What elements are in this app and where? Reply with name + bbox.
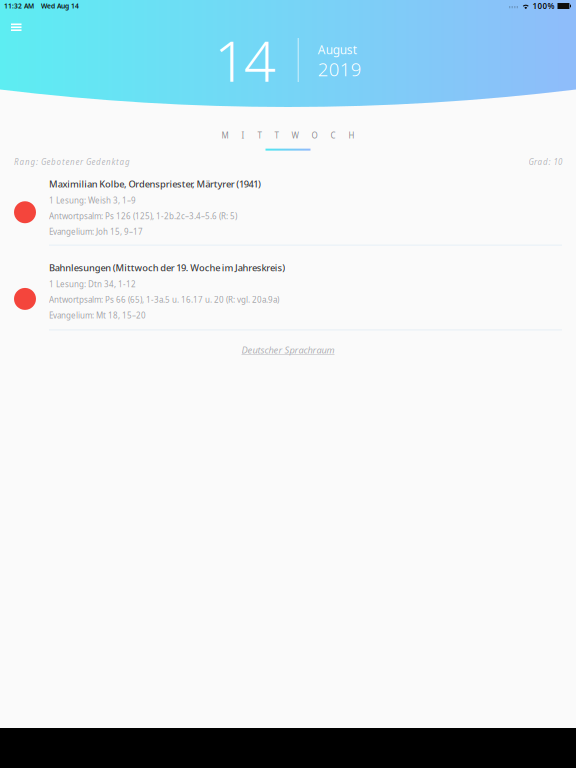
staticText: 2019	[318, 57, 362, 81]
staticText: 14	[214, 23, 276, 97]
staticText: Rang: Gebotener Gedenktag	[14, 157, 130, 167]
staticText: Wed Aug 14	[41, 2, 79, 10]
button[interactable]: Bahnlesungen (Mittwoch der 19. Woche im …	[0, 246, 576, 329]
button[interactable]: Maximilian Kolbe, Ordenspriester, Märtyr…	[0, 167, 576, 244]
staticText: Evangelium: Joh 15, 9–17	[49, 226, 143, 237]
staticText: 1 Lesung: Weish 3, 1–9	[49, 195, 136, 206]
staticText: 1 Lesung: Dtn 34, 1-12	[49, 279, 136, 289]
staticText: 100%	[532, 1, 554, 11]
staticText: 11:32 AM	[4, 2, 34, 10]
staticText: Bahnlesungen (Mittwoch der 19. Woche im …	[49, 261, 285, 274]
staticText: August	[318, 42, 357, 57]
staticText: Maximilian Kolbe, Ordenspriester, Märtyr…	[49, 178, 261, 190]
staticText: Deutscher Sprachraum	[241, 344, 334, 356]
staticText: M I T T W O C H	[221, 130, 354, 141]
button[interactable]: Menu	[0, 12, 32, 37]
staticText: Evangelium: Mt 18, 15–20	[49, 310, 146, 321]
staticText: Grad: 10	[528, 157, 562, 167]
staticText: Antwortpsalm: Ps 126 (125), 1-2b.2c–3.4–…	[49, 211, 237, 221]
button[interactable]: Deutscher Sprachraum	[0, 331, 576, 367]
staticText: Antwortpsalm: Ps 66 (65), 1-3a.5 u. 16.1…	[49, 294, 279, 305]
